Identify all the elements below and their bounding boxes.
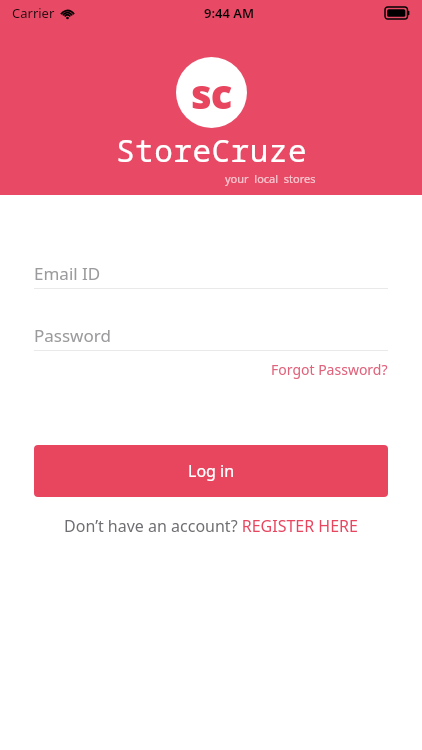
button[interactable]: Log in <box>34 445 388 497</box>
button[interactable]: Email ID <box>34 258 388 288</box>
button[interactable]: Don’t have an account? REGISTER HERE <box>34 511 388 541</box>
staticText: Forgot Password? <box>271 360 388 379</box>
other: Wi-Fi <box>60 7 75 19</box>
staticText: your local stores <box>225 171 316 186</box>
staticText: StoreCruze <box>116 129 307 171</box>
staticText: Password <box>34 324 111 347</box>
staticText: 9:44 AM <box>204 4 255 22</box>
staticText: Carrier <box>12 4 55 22</box>
staticText: sc <box>191 66 232 120</box>
other: Battery <box>385 7 410 19</box>
staticText: Don’t have an account? REGISTER HERE <box>64 515 358 537</box>
button[interactable]: Forgot Password? <box>271 360 388 379</box>
staticText: Log in <box>188 460 235 482</box>
staticText: Email ID <box>34 262 101 285</box>
button[interactable]: Password <box>34 320 388 350</box>
